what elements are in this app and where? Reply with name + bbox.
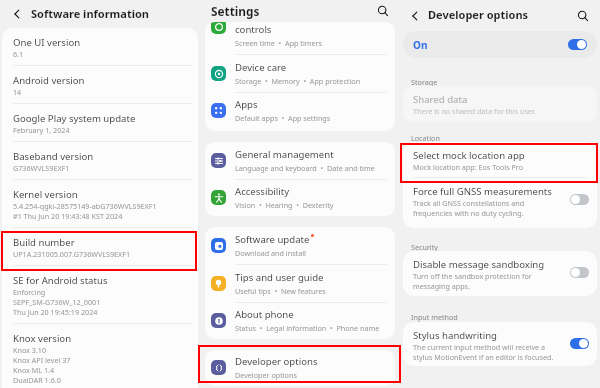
staticText: Baseband version: [13, 150, 94, 163]
staticText: Language and keyboard • Date and time: [235, 163, 375, 173]
staticText: Input method: [411, 312, 458, 322]
staticText: UP1A.231005.007.G736WVLS9EXF1: [13, 249, 131, 259]
button[interactable]: Toggle: [570, 267, 589, 278]
staticText: messaging apps.: [413, 281, 470, 291]
staticText: General management: [235, 148, 334, 161]
button[interactable]: SE for Android status: [2, 266, 198, 323]
staticText: SEPF_SM-G736W_12_0001: [13, 297, 101, 307]
button[interactable]: Kernel version: [2, 180, 198, 227]
staticText: Kernel version: [13, 188, 78, 201]
staticText: Knox 3.10: [13, 345, 47, 355]
staticText: Select mock location app: [413, 149, 525, 162]
staticText: Turn off the sandbox protection for: [413, 271, 532, 281]
staticText: Force full GNSS measurements: [413, 185, 552, 198]
staticText: #1 Thu Jun 20 19:43:48 KST 2024: [13, 211, 123, 221]
staticText: stylus MotionEvent if an editor is focus…: [413, 352, 554, 362]
staticText: Apps: [235, 98, 258, 111]
button[interactable]: Search: [375, 3, 391, 19]
button[interactable]: Disable message sandboxing: [403, 251, 597, 293]
button[interactable]: One UI version: [2, 28, 198, 65]
button[interactable]: Build number: [2, 228, 198, 265]
staticText: 5.4.254-qgki-28575149-abG736WVLS9EXF1: [13, 201, 157, 211]
staticText: February 1, 2024: [13, 125, 70, 135]
staticText: Stylus handwriting: [413, 329, 498, 342]
staticText: Download and install: [235, 248, 306, 258]
staticText: G736WVLS9EXF1: [13, 163, 70, 173]
button[interactable]: General management: [205, 142, 395, 179]
button[interactable]: Toggle: [570, 194, 589, 205]
staticText: controls: [235, 23, 272, 36]
staticText: One UI version: [13, 36, 81, 49]
button[interactable]: Accessibility: [205, 180, 395, 215]
staticText: Enforcing: [13, 287, 46, 297]
staticText: 6.1: [13, 49, 24, 59]
button[interactable]: Select mock location app: [403, 142, 597, 174]
button[interactable]: Stylus handwriting: [403, 322, 597, 364]
button[interactable]: Back: [407, 8, 423, 24]
staticText: Thu Jun 20 19:45:19 2024: [13, 307, 98, 317]
staticText: Developer options: [235, 370, 297, 380]
button[interactable]: Software update: [205, 227, 395, 264]
staticText: There is no shared data for this user.: [413, 106, 536, 116]
staticText: Knox version: [13, 332, 72, 345]
staticText: Device care: [235, 61, 287, 74]
button[interactable]: About phone: [205, 303, 395, 338]
staticText: Mock location app: Eos Tools Pro: [413, 162, 524, 172]
staticText: Accessibility: [235, 185, 290, 198]
staticText: Knox ML 1.4: [13, 365, 55, 375]
button[interactable]: Toggle: [568, 39, 587, 50]
staticText: Location: [411, 133, 440, 142]
staticText: SE for Android status: [13, 274, 108, 287]
staticText: Settings: [211, 3, 260, 19]
button[interactable]: Tips and user guide: [205, 265, 395, 302]
button[interactable]: Baseband version: [2, 142, 198, 179]
button[interactable]: Android version: [2, 66, 198, 103]
staticText: Track all GNSS constellations and: [413, 198, 525, 208]
button[interactable]: On: [403, 31, 597, 58]
staticText: Status • Legal information • Phone name: [235, 323, 380, 333]
staticText: The current input method will receive a: [413, 342, 545, 352]
staticText: DualDAR 1.6.0: [13, 375, 61, 385]
staticText: Security: [411, 242, 438, 251]
button[interactable]: Knox version: [2, 324, 198, 387]
staticText: Developer options: [235, 355, 318, 368]
button[interactable]: Shared data: [403, 86, 597, 118]
button[interactable]: Search: [575, 8, 591, 24]
staticText: Build number: [13, 236, 75, 249]
staticText: Shared data: [413, 93, 468, 106]
staticText: Storage • Memory • App protection: [235, 76, 361, 86]
staticText: On: [413, 38, 428, 52]
button[interactable]: Device care: [205, 55, 395, 92]
button[interactable]: Force full GNSS measurements: [403, 178, 597, 220]
staticText: Storage: [411, 77, 438, 86]
staticText: About phone: [235, 308, 294, 321]
staticText: Software update: [235, 233, 310, 246]
staticText: Software information: [31, 6, 149, 21]
button[interactable]: Toggle: [570, 338, 589, 349]
staticText: Knox API level 37: [13, 355, 71, 365]
staticText: Screen time • App timers: [235, 38, 322, 48]
staticText: Disable message sandboxing: [413, 258, 545, 271]
staticText: Useful tips • New features: [235, 286, 326, 296]
staticText: Android version: [13, 74, 85, 87]
staticText: 14: [13, 87, 22, 97]
staticText: Default apps • App settings: [235, 113, 331, 123]
staticText: frequencies with no duty cycling.: [413, 208, 524, 218]
button[interactable]: Digital wellbeing and parental: [205, 22, 395, 54]
staticText: Tips and user guide: [235, 271, 324, 284]
button[interactable]: Developer options: [205, 350, 395, 385]
button[interactable]: Google Play system update: [2, 104, 198, 141]
staticText: Vision • Hearing • Dexterity: [235, 200, 334, 210]
staticText: Developer options: [428, 7, 529, 22]
button[interactable]: Back: [9, 6, 25, 22]
button[interactable]: Apps: [205, 93, 395, 128]
staticText: Google Play system update: [13, 112, 136, 125]
